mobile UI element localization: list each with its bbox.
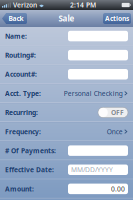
staticText: Once bbox=[107, 127, 123, 136]
staticText: Account#: bbox=[5, 70, 37, 79]
button[interactable]: Actions bbox=[103, 13, 131, 24]
staticText: 0.00 bbox=[111, 184, 125, 193]
staticText: Personal Checking bbox=[64, 89, 123, 98]
button[interactable] bbox=[68, 50, 128, 60]
staticText: Amount: bbox=[5, 184, 34, 193]
button[interactable]: Personal Checking bbox=[64, 88, 128, 99]
staticText: Verizon bbox=[13, 1, 37, 9]
staticText: Recurring: bbox=[5, 108, 38, 117]
staticText: # Of Payments: bbox=[5, 146, 56, 155]
staticText: Acct. Type: bbox=[5, 89, 41, 98]
staticText: Name: bbox=[5, 32, 27, 40]
staticText: Back bbox=[8, 14, 23, 23]
staticText: 2:14 PM bbox=[70, 1, 96, 9]
button[interactable]: Once bbox=[107, 126, 128, 137]
button[interactable] bbox=[68, 145, 128, 156]
staticText: OFF bbox=[111, 108, 124, 117]
staticText: Effective Date: bbox=[5, 165, 54, 174]
staticText: Frequency: bbox=[5, 127, 41, 136]
staticText: Sale bbox=[58, 13, 74, 24]
button[interactable] bbox=[68, 69, 128, 79]
staticText: Routing#: bbox=[5, 51, 36, 60]
button[interactable]: 0.00 bbox=[68, 184, 128, 194]
button[interactable]: Back bbox=[2, 13, 27, 24]
button[interactable]: MM/DD/YYYY bbox=[68, 164, 128, 175]
staticText: MM/DD/YYYY bbox=[71, 165, 113, 174]
button[interactable]: Recurring bbox=[98, 107, 128, 118]
button[interactable] bbox=[68, 31, 128, 41]
staticText: Actions bbox=[105, 14, 129, 23]
